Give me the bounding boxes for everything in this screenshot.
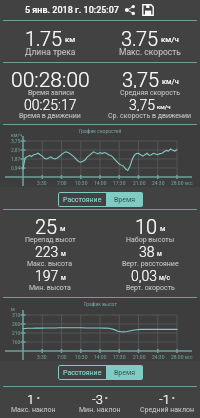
staticText: 21:00 [133,180,146,186]
staticText: -1 [159,392,170,405]
staticText: м:с [185,180,193,186]
button[interactable]: Время [107,192,143,207]
staticText: 3,75 [129,97,155,111]
staticText: 3:30 [37,354,47,360]
staticText: Макс. наклон [11,406,56,414]
staticText: 3,75 [121,27,159,46]
staticText: 28:00 [171,180,184,186]
staticText: Средний наклон [140,406,194,414]
staticText: 21:00 [133,354,146,360]
staticText: 223 [35,244,59,259]
staticText: 1 [27,392,35,405]
staticText: 14:00 [94,354,107,360]
staticText: Мин. высота [29,284,71,292]
staticText: 00:28:00 [11,68,90,88]
staticText: Время в движении [19,112,81,120]
staticText: 24:30 [152,180,165,186]
staticText: км [65,35,76,44]
staticText: Мин. наклон [79,406,121,414]
staticText: м:с [185,354,193,360]
button[interactable]: Save [142,4,154,16]
staticText: Ср. скорость в движении [108,112,192,120]
staticText: Верт. скорость [126,284,175,292]
staticText: ° [172,396,175,404]
staticText: 25 [35,215,58,235]
button[interactable]: Share [124,4,136,16]
staticText: График высот [84,301,117,307]
staticText: 5 янв. 2018 г. 10:25:07 [25,5,119,16]
staticText: 0,03 [131,268,157,283]
staticText: 1,87 [11,156,21,162]
staticText: м [60,224,66,233]
staticText: м [11,306,15,312]
staticText: График скоростей [79,128,122,134]
staticText: Набор высоты [126,236,175,244]
staticText: 17:30 [113,354,126,360]
staticText: 7:00 [57,354,67,360]
staticText: Верт. расстояние [122,260,179,268]
staticText: 38 [139,244,155,259]
staticText: Расстояние [63,196,102,204]
staticText: Время [114,369,136,377]
staticText: 7:00 [57,180,67,186]
button[interactable]: Время [107,365,143,380]
staticText: 2,81 [11,147,21,153]
staticText: км/ч [162,77,179,86]
staticText: Макс. высота [27,260,73,268]
staticText: ° [105,396,108,404]
staticText: ° [37,396,40,404]
staticText: 14:00 [94,180,107,186]
staticText: 1,75 [25,27,63,46]
staticText: км/ч [161,35,179,44]
staticText: 3:30 [37,180,47,186]
staticText: 10:30 [75,354,88,360]
staticText: Время [114,196,136,204]
staticText: 10:30 [75,180,88,186]
staticText: 3,75 [122,68,160,88]
staticText: Длина трека [25,47,76,57]
staticText: 160 [12,339,21,345]
staticText: Макс. скорость [119,47,181,57]
button[interactable]: Расстояние [58,365,107,380]
staticText: 17:30 [113,180,126,186]
staticText: м/с [159,274,170,282]
staticText: 3,75 [11,138,21,144]
button[interactable]: Расстояние [58,192,107,207]
staticText: км/ч [11,132,23,138]
staticText: -3 [92,392,103,405]
staticText: м [61,250,66,258]
staticText: 197 [35,268,59,283]
staticText: 24:30 [152,354,165,360]
staticText: Средняя скорость [120,89,181,97]
staticText: км/ч [157,103,171,110]
staticText: м [160,224,166,233]
staticText: Перепад высот [25,236,76,244]
staticText: 0,94 [11,165,21,171]
staticText: 310 [12,312,21,318]
staticText: 28:00 [171,354,184,360]
staticText: 00:25:17 [24,97,77,111]
staticText: м [157,250,162,258]
staticText: Расстояние [63,369,102,377]
staticText: 260 [12,321,21,327]
staticText: Время записи [28,89,74,97]
staticText: 210 [12,330,21,336]
staticText: м [61,274,66,282]
staticText: 10 [135,215,158,235]
